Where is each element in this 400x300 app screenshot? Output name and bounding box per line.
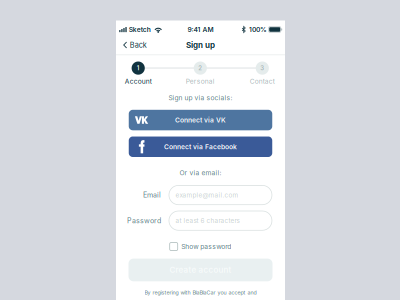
staticText: at least 6 characters: [175, 217, 239, 224]
staticText: 9:41 AM: [187, 25, 213, 34]
staticText: Email: [143, 191, 161, 199]
staticText: Connect via Facebook: [164, 143, 237, 151]
staticText: Connect via VK: [175, 116, 226, 124]
staticText: Account: [125, 77, 152, 85]
staticText: Sign up: [186, 40, 215, 50]
staticText: 100%: [249, 25, 267, 34]
staticText: Show password: [181, 242, 231, 251]
staticText: Sign up via socials:: [168, 94, 232, 102]
button[interactable]: 2: [183, 61, 217, 85]
staticText: Or via email:: [179, 169, 221, 177]
staticText: By registering with BlaBlaCar you accept…: [144, 289, 256, 296]
staticText: 3: [260, 64, 264, 72]
button[interactable]: Show password: [168, 240, 233, 253]
staticText: example@mail.com: [175, 191, 238, 199]
button[interactable]: example@mail.com: [169, 185, 272, 205]
button[interactable]: 3: [245, 61, 279, 85]
button[interactable]: Connect via VK: [129, 110, 272, 130]
button[interactable]: Connect via Facebook: [129, 136, 272, 157]
staticText: Back: [130, 41, 147, 49]
staticText: Personal: [186, 77, 215, 85]
button[interactable]: Back: [116, 35, 152, 54]
staticText: 2: [198, 64, 202, 72]
staticText: Password: [127, 216, 161, 225]
button[interactable]: at least 6 characters: [169, 211, 272, 230]
staticText: Contact: [250, 77, 275, 85]
staticText: Sketch: [129, 25, 151, 34]
staticText: Create account: [169, 265, 231, 275]
button[interactable]: 1: [121, 61, 155, 85]
staticText: 1: [137, 64, 140, 72]
